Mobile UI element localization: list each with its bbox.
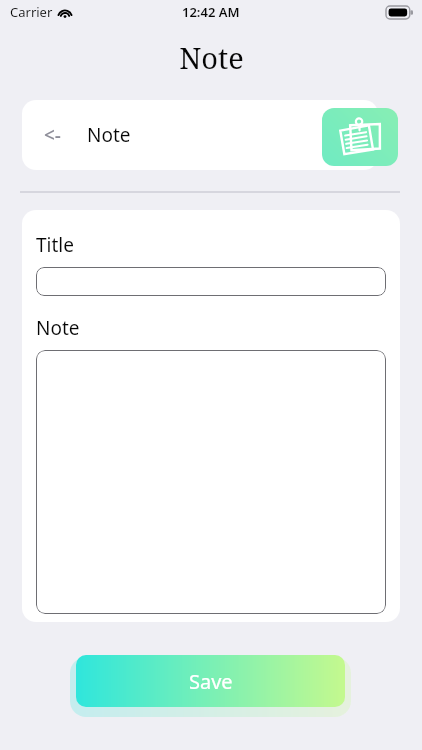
staticText: Note xyxy=(87,122,131,148)
button[interactable]: Save xyxy=(76,655,345,707)
button[interactable]: Note icon xyxy=(322,108,398,166)
staticText: Title xyxy=(36,232,74,258)
staticText: Note xyxy=(179,38,244,77)
button[interactable] xyxy=(36,350,386,614)
staticText: Save xyxy=(189,668,233,695)
staticText: <- xyxy=(44,122,61,148)
button[interactable]: <- xyxy=(22,100,378,170)
staticText: Carrier xyxy=(10,3,53,21)
staticText: Note xyxy=(36,315,80,341)
button[interactable] xyxy=(36,267,386,296)
staticText: 12:42 AM xyxy=(182,3,240,21)
